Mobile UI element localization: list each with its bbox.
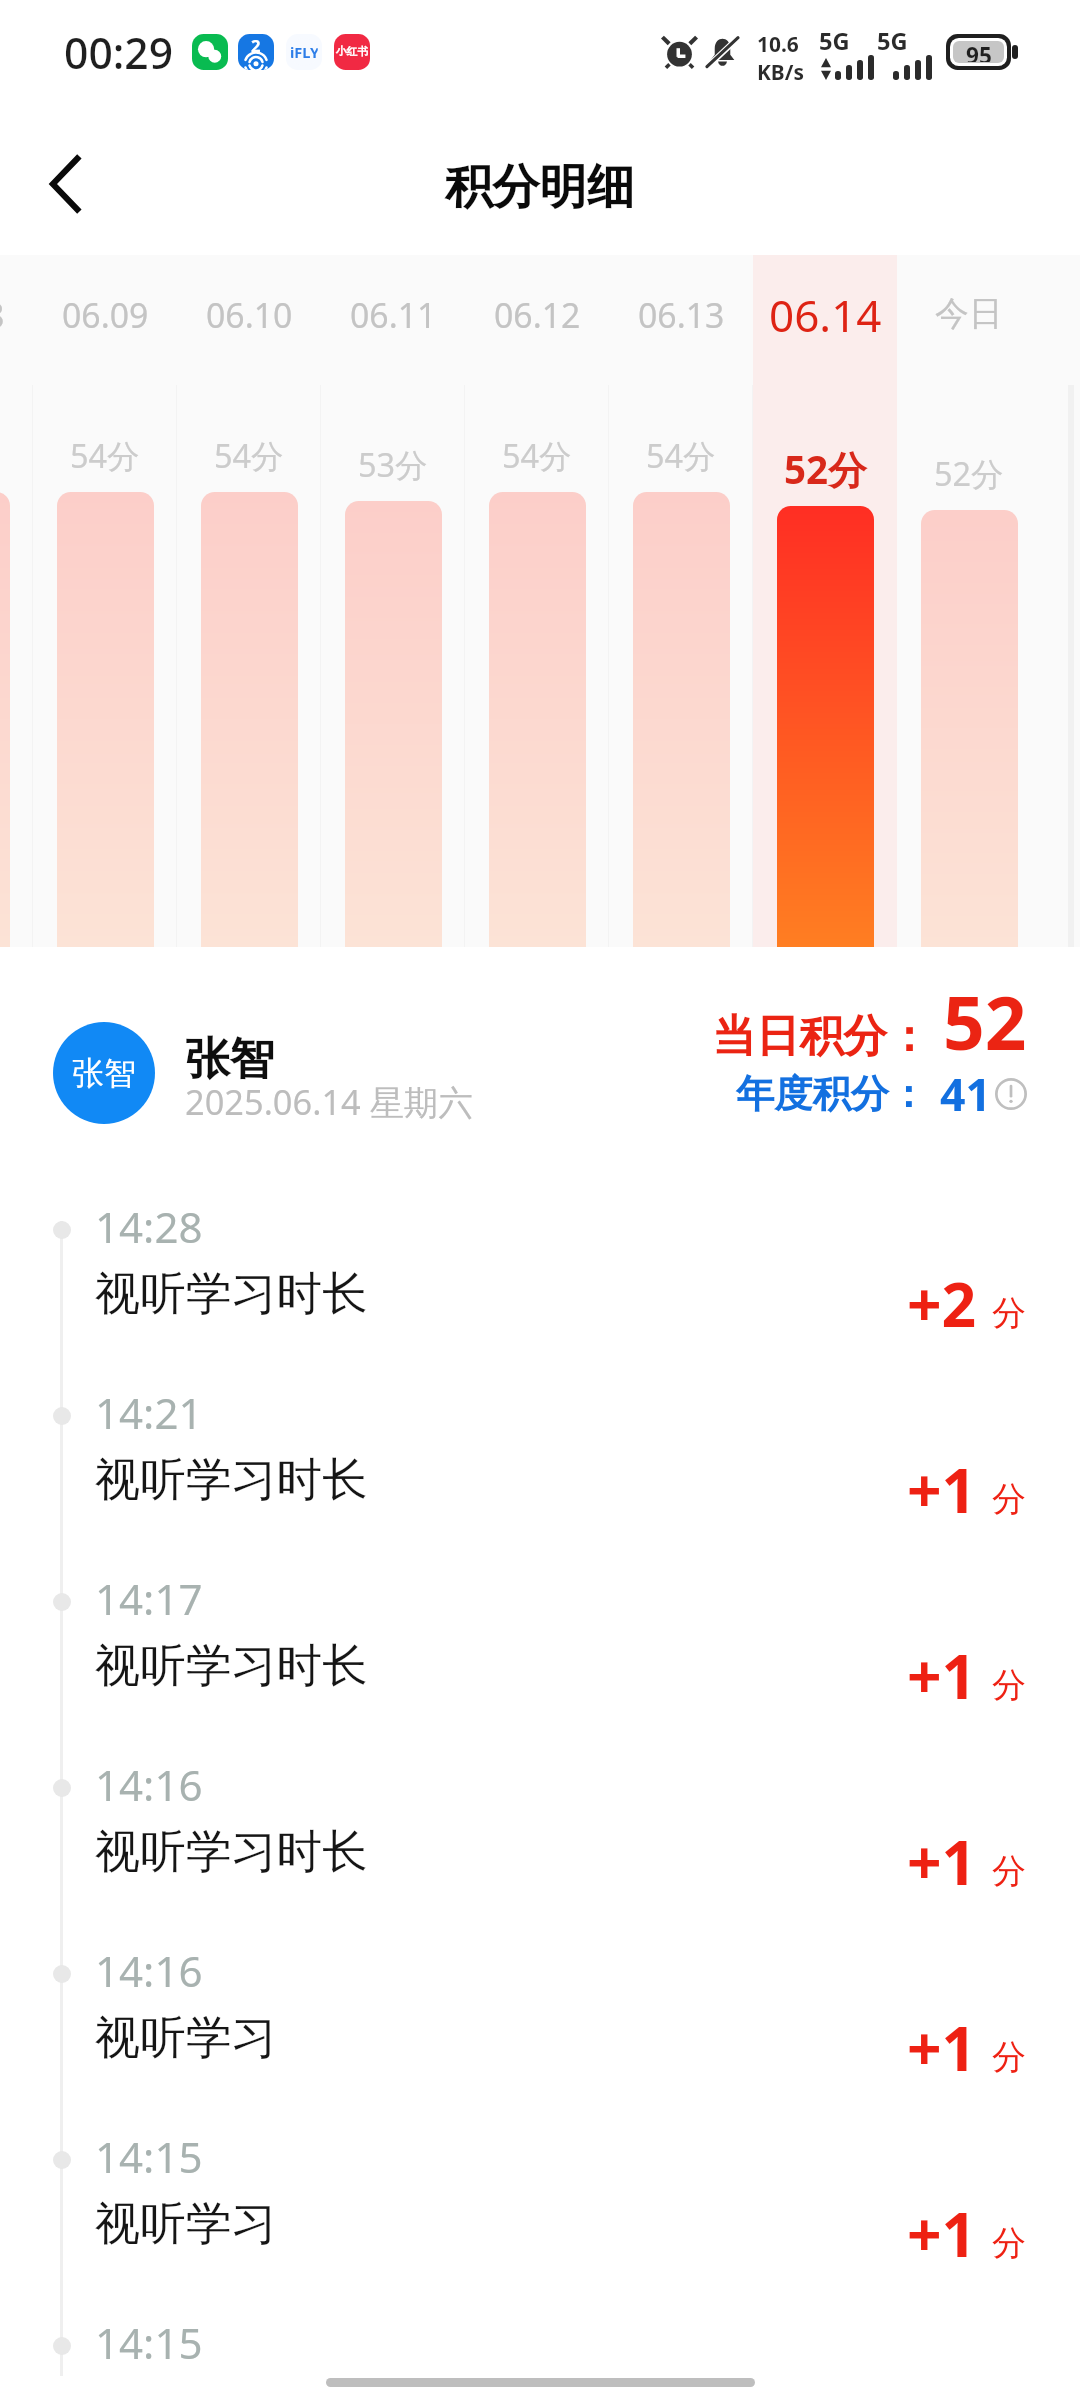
staticText: 2025.06.14 星期六	[185, 1078, 473, 1125]
staticText: iFLY	[290, 42, 318, 62]
button[interactable]: 14:16	[0, 1757, 1080, 1943]
staticText: 视听学习时长	[95, 1637, 368, 1694]
button[interactable]: 06.13	[609, 255, 753, 947]
staticText: 分	[992, 1850, 1027, 1893]
button[interactable]: Info	[995, 1078, 1027, 1110]
staticText: 52分	[784, 443, 867, 496]
staticText: 当日积分：	[712, 1009, 931, 1064]
staticText: 95	[966, 41, 992, 62]
staticText: 视听学习时长	[95, 1823, 368, 1880]
staticText: 年度积分：	[736, 1070, 928, 1118]
staticText: KB/s	[757, 58, 804, 86]
staticText: 54分	[214, 433, 284, 477]
staticText: +1	[907, 1820, 977, 1902]
staticText: 积分明细	[445, 157, 635, 217]
staticText: 52	[943, 972, 1027, 1071]
button[interactable]: 06.09	[33, 255, 177, 947]
button[interactable]: 06.10	[177, 255, 321, 947]
staticText: 06.10	[206, 292, 293, 338]
staticText: 41	[940, 1063, 991, 1124]
button[interactable]: 14:15	[0, 2129, 1080, 2315]
staticText: 视听学习时长	[95, 1451, 368, 1508]
button[interactable]: 06.11	[321, 255, 465, 947]
staticText: 54分	[502, 433, 572, 477]
button[interactable]: 14:28	[0, 1199, 1080, 1385]
staticText: +1	[907, 2006, 977, 2088]
staticText: 06.09	[62, 292, 149, 338]
staticText: 分	[992, 2036, 1027, 2079]
button[interactable]: 14:21	[0, 1385, 1080, 1571]
staticText: 54分	[646, 433, 716, 477]
staticText: 5G	[819, 25, 850, 57]
staticText: 张智	[185, 1031, 275, 1087]
staticText: 分	[992, 2222, 1027, 2265]
staticText: 视听学习	[95, 2195, 277, 2252]
staticText: 视听学习时长	[95, 1265, 368, 1322]
staticText: 2	[251, 34, 261, 56]
staticText: 06.08	[0, 292, 5, 338]
staticText: 06.12	[494, 292, 581, 338]
staticText: 52分	[934, 451, 1004, 495]
staticText: 54分	[70, 433, 140, 477]
button[interactable]: 06.08	[0, 255, 33, 947]
staticText: 06.14	[769, 285, 882, 345]
staticText: 14:16	[95, 1942, 203, 1999]
staticText: +1	[907, 1634, 977, 1716]
staticText: 06.13	[638, 292, 725, 338]
staticText: 14:15	[95, 2314, 203, 2371]
staticText: +1	[907, 1448, 977, 1530]
staticText: 今日	[935, 292, 1003, 335]
staticText: 分	[992, 1664, 1027, 1707]
button[interactable]: 今日	[897, 255, 1041, 947]
staticText: 张智	[72, 1053, 136, 1093]
staticText: 5G	[877, 25, 908, 57]
button[interactable]: 14:15	[0, 2315, 1080, 2388]
button[interactable]: 14:16	[0, 1943, 1080, 2129]
staticText: 53分	[358, 442, 428, 486]
staticText: +2	[907, 1262, 977, 1344]
staticText: 分	[992, 1478, 1027, 1521]
staticText: 14:16	[95, 1756, 203, 1813]
staticText: 06.11	[350, 292, 437, 338]
staticText: 分	[992, 1292, 1027, 1335]
staticText: 视听学习	[95, 2009, 277, 2066]
staticText: 10.6	[757, 30, 799, 58]
button[interactable]: 14:17	[0, 1571, 1080, 1757]
button[interactable]: 06.12	[465, 255, 609, 947]
staticText: 14:21	[95, 1384, 203, 1441]
staticText: 小红书	[336, 45, 369, 59]
staticText: 14:28	[95, 1198, 203, 1255]
button[interactable]: 06.14	[753, 255, 897, 947]
button[interactable]: Back	[4, 123, 125, 244]
staticText: 14:17	[95, 1570, 203, 1627]
staticText: +1	[907, 2192, 977, 2274]
staticText: 14:15	[95, 2128, 203, 2185]
staticText: 00:29	[64, 23, 174, 81]
